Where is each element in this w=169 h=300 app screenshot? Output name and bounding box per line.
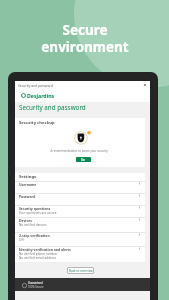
staticText: Identity verification and alerts bbox=[19, 247, 71, 252]
staticText: Security checkup bbox=[19, 120, 55, 126]
staticText: 4 recommendations to boost your security bbox=[15, 149, 143, 153]
staticText: Devices bbox=[19, 218, 32, 223]
staticText: No verified email address bbox=[19, 256, 56, 260]
button[interactable]: Password bbox=[15, 194, 145, 205]
button[interactable]: 2-step verification bbox=[15, 233, 145, 246]
staticText: 100% Secure bbox=[28, 285, 44, 289]
button[interactable]: Devices bbox=[15, 218, 145, 232]
button[interactable]: Identity verification and alerts bbox=[15, 247, 145, 262]
staticText: Settings bbox=[19, 174, 37, 180]
staticText: Security and password bbox=[19, 103, 86, 112]
staticText: Desjardins bbox=[27, 92, 55, 99]
staticText: Off bbox=[19, 238, 24, 242]
staticText: Password bbox=[19, 194, 36, 199]
button[interactable]: Close tab bbox=[143, 83, 147, 87]
button[interactable]: Go bbox=[76, 157, 91, 162]
button[interactable]: Security questions bbox=[15, 206, 145, 217]
staticText: Go bbox=[81, 158, 86, 162]
staticText: Secure environment bbox=[41, 21, 129, 56]
staticText: Guaranteed bbox=[28, 281, 43, 285]
staticText: Username bbox=[19, 182, 37, 187]
staticText: 2-step verification bbox=[19, 233, 50, 238]
staticText: Security questions bbox=[19, 206, 51, 211]
staticText: No verified devices bbox=[19, 223, 47, 227]
staticText: No verified phone number bbox=[19, 252, 58, 256]
button[interactable]: Back to overview bbox=[67, 267, 94, 274]
staticText: Back to overview bbox=[69, 269, 93, 273]
staticText: Security and password bbox=[18, 83, 53, 87]
button[interactable]: Username bbox=[15, 182, 145, 193]
staticText: Your questions are secure bbox=[19, 211, 57, 215]
